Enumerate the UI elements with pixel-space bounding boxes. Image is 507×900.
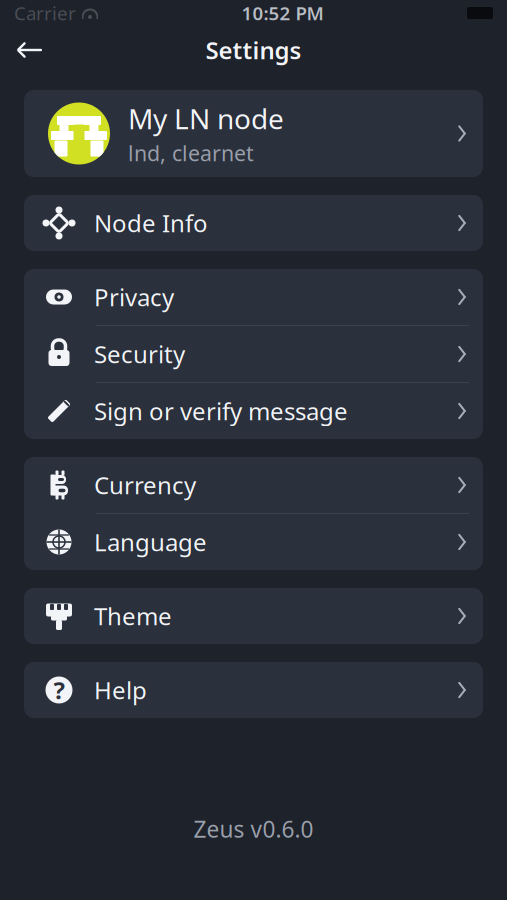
button[interactable]: Sign or verify message	[24, 383, 483, 439]
button[interactable]: Back	[8, 28, 52, 72]
button[interactable]: Language	[24, 514, 483, 570]
staticText: Security	[94, 338, 185, 370]
staticText: Privacy	[94, 281, 174, 313]
button[interactable]: Theme	[24, 588, 483, 644]
button[interactable]: Currency	[24, 457, 483, 513]
button[interactable]: ?	[24, 662, 483, 718]
staticText: 10:52 PM	[241, 1, 323, 25]
staticText: Help	[94, 674, 147, 706]
staticText: My LN node	[128, 100, 284, 137]
button[interactable]: Security	[24, 326, 483, 382]
staticText: Theme	[94, 600, 172, 632]
staticText: Carrier	[14, 1, 76, 25]
staticText: lnd, clearnet	[128, 139, 254, 167]
button[interactable]: Privacy	[24, 269, 483, 325]
button[interactable]: Node Info	[24, 195, 483, 251]
staticText: Sign or verify message	[94, 395, 348, 427]
button[interactable]: My LN node	[24, 90, 483, 177]
staticText: Currency	[94, 469, 196, 501]
staticText: Zeus v0.6.0	[193, 814, 313, 844]
staticText: Settings	[205, 34, 301, 66]
staticText: Language	[94, 526, 207, 558]
staticText: Node Info	[94, 207, 208, 239]
staticText: ?	[53, 674, 64, 706]
